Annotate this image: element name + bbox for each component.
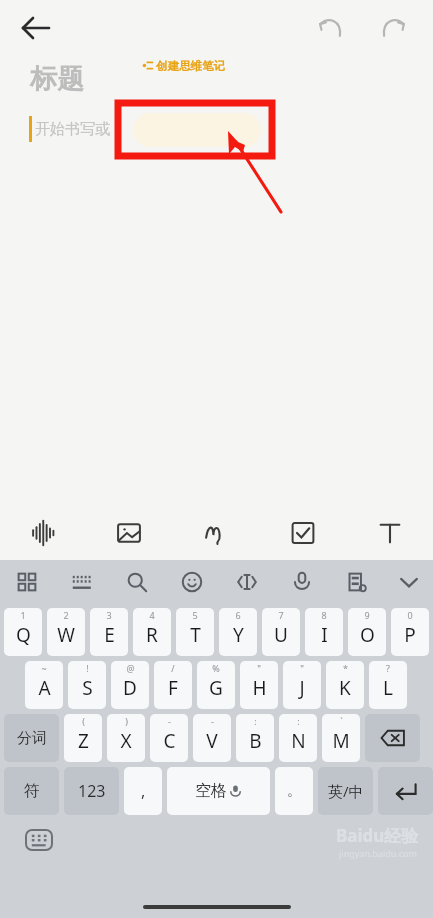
button[interactable]: 7 [262, 608, 300, 656]
staticText: , [141, 780, 146, 802]
button[interactable]: Draw [172, 505, 259, 560]
button[interactable]: Emoji [164, 560, 219, 604]
button[interactable]: Image [86, 505, 172, 560]
button[interactable]: * [326, 661, 364, 709]
button[interactable]: % [197, 661, 235, 709]
button[interactable]: Checklist [259, 505, 346, 560]
staticText: 1 [20, 609, 26, 621]
staticText: H [252, 675, 267, 701]
button[interactable]: ? [369, 661, 407, 709]
button[interactable]: 英/中 [318, 767, 373, 815]
staticText: 7 [278, 609, 284, 621]
button[interactable]: ~ [25, 661, 63, 709]
button[interactable]: 创建思维笔记 [142, 57, 225, 74]
button[interactable]: - [150, 714, 188, 762]
staticText: V [206, 728, 218, 754]
button[interactable]: ) [107, 714, 145, 762]
staticText: 4 [149, 609, 155, 621]
button[interactable]: Voice input [274, 560, 329, 604]
staticText: B [249, 728, 262, 754]
button[interactable]: : [279, 714, 317, 762]
staticText: Baidu经验 [336, 824, 419, 847]
staticText: F [168, 675, 178, 701]
staticText: 3 [106, 609, 112, 621]
button[interactable]: Hide keyboard [384, 560, 433, 604]
staticText: - [211, 715, 214, 727]
button[interactable]: ` [322, 714, 360, 762]
button[interactable]: Audio [0, 505, 86, 560]
staticText: 9 [364, 609, 370, 621]
staticText: ) [125, 715, 128, 727]
staticText: 0 [407, 609, 413, 621]
staticText: G [209, 675, 223, 701]
button[interactable]: 4 [133, 608, 171, 656]
staticText: ! [86, 662, 89, 674]
button[interactable]: Undo [309, 7, 351, 49]
staticText: R [146, 622, 158, 648]
button[interactable]: " [240, 661, 278, 709]
staticText: 标题 [30, 62, 84, 96]
button[interactable]: Search [109, 560, 164, 604]
button[interactable]: 9 [348, 608, 386, 656]
button[interactable]: ( [64, 714, 102, 762]
button[interactable]: Switch keyboard [24, 828, 54, 852]
staticText: Q [16, 622, 31, 648]
staticText: N [291, 728, 306, 754]
staticText: 。 [287, 782, 301, 800]
staticText: 8 [321, 609, 327, 621]
button[interactable]: 。 [275, 767, 313, 815]
staticText: / [171, 662, 175, 674]
staticText: 5 [192, 609, 198, 621]
button[interactable]: : [236, 714, 274, 762]
button[interactable]: Redo [373, 7, 415, 49]
staticText: * [343, 662, 348, 674]
button[interactable]: Back [14, 6, 58, 50]
button[interactable]: 5 [176, 608, 214, 656]
staticText: U [274, 622, 288, 648]
staticText: 符 [24, 781, 40, 801]
button[interactable]: 符 [4, 767, 59, 815]
button[interactable]: @ [111, 661, 149, 709]
button[interactable]: ! [68, 661, 106, 709]
staticText: 开始书写或 [35, 120, 110, 139]
staticText: 创建思维笔记 [156, 59, 225, 73]
staticText: @ [126, 662, 135, 674]
button[interactable]: Text style [346, 505, 433, 560]
staticText: O [360, 622, 375, 648]
button[interactable]: 空格 [167, 767, 270, 815]
button[interactable]: , [124, 767, 162, 815]
staticText: S [82, 675, 93, 701]
button[interactable]: Keyboard layout [54, 560, 109, 604]
staticText: E [104, 622, 115, 648]
staticText: C [163, 728, 176, 754]
button[interactable]: Enter [378, 767, 433, 815]
staticText: 英/中 [328, 781, 364, 801]
button[interactable]: Backspace [365, 714, 420, 762]
button[interactable]: 1 [4, 608, 42, 656]
button[interactable]: Clipboard [329, 560, 384, 604]
staticText: % [212, 662, 220, 674]
button[interactable]: 8 [305, 608, 343, 656]
button[interactable]: 0 [391, 608, 429, 656]
button[interactable]: 分词 [4, 714, 59, 762]
staticText: : [254, 715, 257, 727]
staticText: - [168, 715, 171, 727]
button[interactable]: Edit cursor [219, 560, 274, 604]
staticText: D [123, 675, 137, 701]
staticText: ~ [41, 662, 47, 674]
staticText: W [57, 622, 75, 648]
button[interactable]: Grid [0, 560, 54, 604]
staticText: : [297, 715, 300, 727]
button[interactable]: 6 [219, 608, 257, 656]
staticText: 6 [235, 609, 241, 621]
staticText: " [257, 662, 261, 674]
staticText: 123 [78, 780, 106, 802]
button[interactable]: " [283, 661, 321, 709]
button[interactable]: 2 [47, 608, 85, 656]
button[interactable]: 123 [64, 767, 119, 815]
button[interactable]: 3 [90, 608, 128, 656]
button[interactable]: / [154, 661, 192, 709]
staticText: T [190, 622, 201, 648]
button[interactable]: - [193, 714, 231, 762]
staticText: " [300, 662, 304, 674]
